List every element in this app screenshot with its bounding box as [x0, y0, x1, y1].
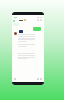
button[interactable] — [19, 30, 23, 33]
button[interactable] — [33, 27, 41, 31]
button[interactable] — [19, 20, 23, 21]
button[interactable]: Back — [13, 20, 15, 22]
